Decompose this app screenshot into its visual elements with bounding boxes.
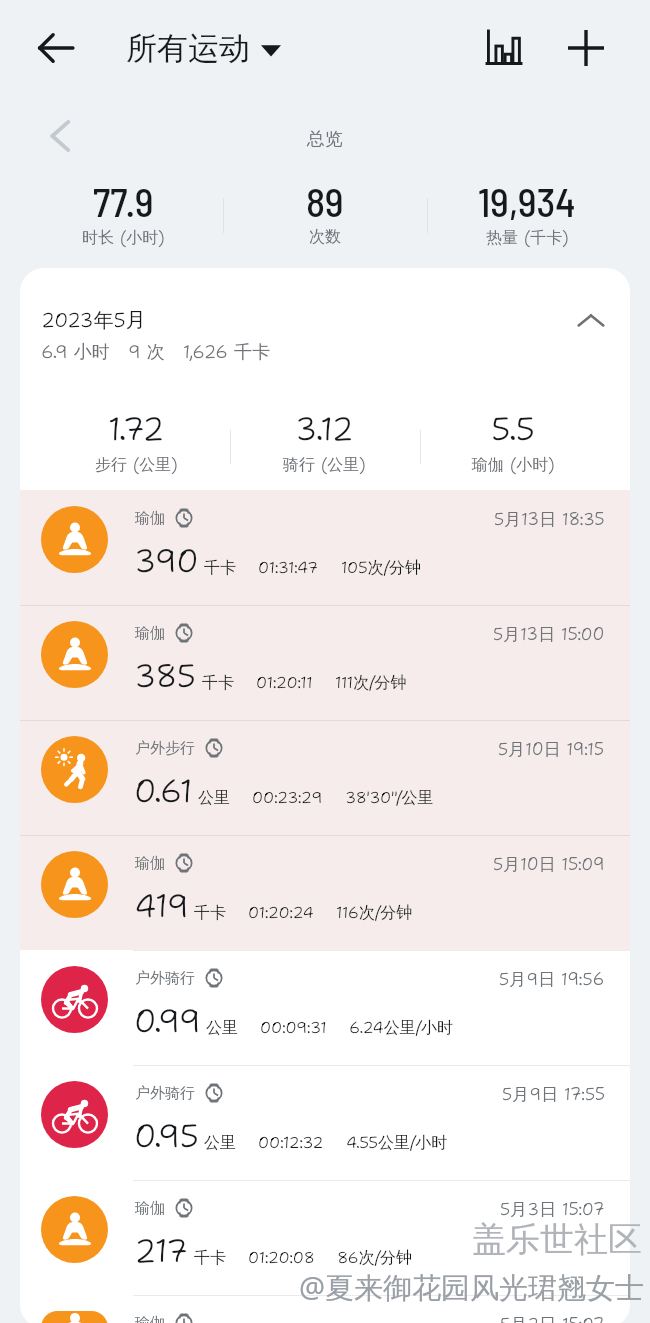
staticText: 6.9 小时 9 次 1,626 千卡 bbox=[41, 340, 270, 364]
staticText: 瑜伽 bbox=[135, 1314, 165, 1323]
staticText: 0.95 bbox=[134, 1114, 199, 1157]
staticText: 0.61 bbox=[134, 769, 193, 812]
staticText: 5月9日 17:55 bbox=[502, 1083, 605, 1106]
staticText: 公里 bbox=[204, 1133, 236, 1153]
staticText: 瑜伽 bbox=[135, 854, 165, 873]
staticText: 4.55公里/小时 bbox=[346, 1132, 448, 1153]
staticText: 3.12 bbox=[295, 407, 354, 450]
staticText: 217 bbox=[134, 1229, 189, 1272]
staticText: 步行 (公里) bbox=[95, 454, 178, 475]
staticText: 公里 bbox=[206, 1018, 238, 1038]
staticText: 89 bbox=[306, 177, 344, 225]
staticText: 瑜伽 (小时) bbox=[472, 454, 555, 475]
staticText: 1.72 bbox=[108, 407, 165, 450]
staticText: 5.5 bbox=[491, 407, 536, 450]
staticText: 次数 bbox=[309, 227, 341, 247]
staticText: 5月13日 15:00 bbox=[493, 623, 605, 646]
staticText: 热量 (千卡) bbox=[486, 227, 569, 248]
staticText: 瑜伽 bbox=[135, 1199, 165, 1218]
staticText: 116次/分钟 bbox=[336, 902, 413, 923]
staticText: 户外骑行 bbox=[135, 969, 195, 988]
button[interactable]: Statistics bbox=[476, 20, 532, 76]
button[interactable]: 户外步行 bbox=[20, 720, 630, 835]
staticText: 所有运动 bbox=[126, 29, 250, 68]
button[interactable]: Previous month bbox=[37, 113, 83, 159]
button[interactable]: 瑜伽 bbox=[20, 490, 630, 605]
button[interactable]: Add bbox=[558, 20, 614, 76]
staticText: 00:12:32 bbox=[258, 1132, 324, 1153]
staticText: 2023年5月 bbox=[41, 307, 146, 334]
staticText: 01:20:11 bbox=[256, 672, 313, 693]
staticText: 419 bbox=[134, 884, 189, 927]
staticText: 千卡 bbox=[194, 903, 226, 923]
staticText: 0.99 bbox=[134, 999, 201, 1042]
button[interactable]: 瑜伽 bbox=[20, 1295, 630, 1323]
staticText: 户外骑行 bbox=[135, 1084, 195, 1103]
staticText: 01:20:24 bbox=[248, 902, 314, 923]
button[interactable]: 瑜伽 bbox=[20, 605, 630, 720]
staticText: 盖乐世社区 bbox=[472, 1218, 642, 1261]
staticText: 千卡 bbox=[204, 558, 236, 578]
staticText: 111次/分钟 bbox=[335, 672, 407, 693]
button[interactable]: 瑜伽 bbox=[20, 835, 630, 950]
staticText: 77.9 bbox=[93, 177, 154, 225]
staticText: 00:23:29 bbox=[252, 787, 323, 808]
staticText: 86次/分钟 bbox=[337, 1247, 413, 1268]
staticText: 6.24公里/小时 bbox=[349, 1017, 453, 1038]
staticText: 5月2日 15:07 bbox=[500, 1313, 605, 1323]
button[interactable]: 户外骑行 bbox=[20, 1065, 630, 1180]
staticText: 千卡 bbox=[202, 673, 234, 693]
staticText: 骑行 (公里) bbox=[283, 454, 366, 475]
staticText: 105次/分钟 bbox=[341, 557, 422, 578]
staticText: 01:20:08 bbox=[248, 1247, 315, 1268]
button[interactable]: Back bbox=[28, 20, 84, 76]
staticText: 5月10日 15:09 bbox=[493, 853, 605, 876]
staticText: 公里 bbox=[198, 788, 230, 808]
staticText: 38'30"/公里 bbox=[345, 787, 434, 808]
staticText: 时长 (小时) bbox=[82, 227, 165, 248]
staticText: 01:31:47 bbox=[258, 557, 319, 578]
button[interactable]: 瑜伽 bbox=[20, 1180, 630, 1295]
staticText: @夏来御花园风光珺翘女士 bbox=[299, 1267, 645, 1307]
button[interactable]: 所有运动 bbox=[126, 20, 281, 76]
staticText: 5月9日 19:56 bbox=[499, 968, 605, 991]
staticText: 瑜伽 bbox=[135, 509, 165, 528]
staticText: 385 bbox=[134, 654, 197, 697]
staticText: 5月13日 18:35 bbox=[494, 508, 605, 531]
staticText: 19,934 bbox=[478, 177, 576, 225]
staticText: 户外步行 bbox=[135, 739, 195, 758]
button[interactable]: 户外骑行 bbox=[20, 950, 630, 1065]
button[interactable]: Collapse bbox=[568, 298, 614, 344]
staticText: 00:09:31 bbox=[260, 1017, 327, 1038]
staticText: 5月3日 15:07 bbox=[500, 1198, 605, 1221]
staticText: 总览 bbox=[307, 128, 343, 151]
staticText: 5月10日 19:15 bbox=[498, 738, 605, 761]
staticText: 390 bbox=[134, 539, 199, 582]
staticText: 千卡 bbox=[194, 1248, 226, 1268]
staticText: 瑜伽 bbox=[135, 624, 165, 643]
